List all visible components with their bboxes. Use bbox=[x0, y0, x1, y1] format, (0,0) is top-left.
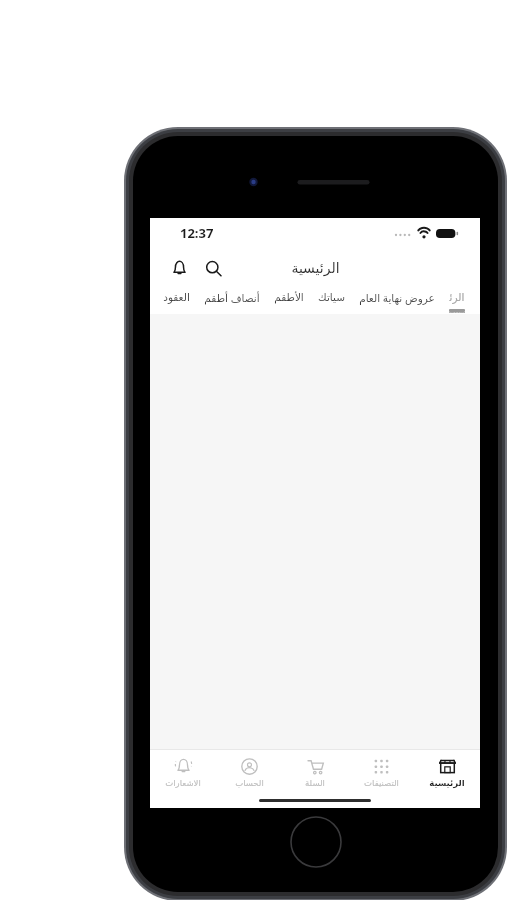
staticText: التصنيفات bbox=[364, 778, 399, 788]
staticText: أنصاف أطقم bbox=[204, 291, 260, 305]
staticText: الأطقم bbox=[274, 291, 304, 303]
button[interactable]: سياتك bbox=[311, 288, 352, 314]
staticText: الاشعارات bbox=[165, 778, 201, 788]
button[interactable]: عروض نهاية العام bbox=[352, 288, 442, 314]
staticText: الحساب bbox=[235, 778, 264, 788]
button[interactable]: الحساب bbox=[216, 750, 282, 796]
button[interactable]: التصنيفات bbox=[348, 750, 414, 796]
button[interactable]: الاشعارات bbox=[150, 750, 216, 796]
staticText: الرئيسية bbox=[429, 778, 465, 788]
button[interactable]: أنصاف أطقم bbox=[197, 288, 267, 314]
staticText: الرئيسية bbox=[291, 260, 340, 276]
button[interactable]: الأطقم bbox=[267, 288, 311, 314]
staticText: 12:37 bbox=[180, 224, 214, 242]
staticText: عروض نهاية العام bbox=[359, 291, 435, 305]
button[interactable]: الرئيسية bbox=[442, 288, 472, 314]
button[interactable]: الرئيسية bbox=[414, 750, 480, 796]
staticText: الرئيسية bbox=[449, 291, 465, 314]
staticText: السلة bbox=[305, 778, 325, 788]
button[interactable]: Notifications bbox=[162, 251, 196, 285]
staticText: سياتك bbox=[318, 291, 345, 303]
button[interactable]: السلة bbox=[282, 750, 348, 796]
staticText: العقود bbox=[163, 291, 190, 303]
button[interactable]: العقود bbox=[156, 288, 197, 314]
button[interactable]: Search bbox=[196, 251, 230, 285]
